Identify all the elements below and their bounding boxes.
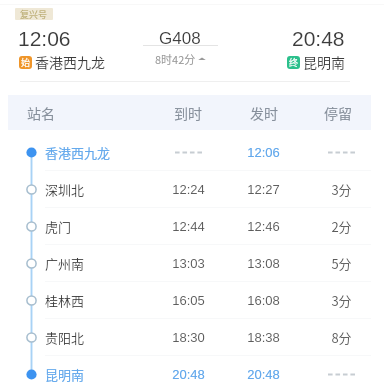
staticText: 桂林西 [45,291,85,310]
staticText: 香港西九龙 [35,52,105,72]
staticText: 12:24 [172,182,205,197]
staticText: 3分 [331,291,352,310]
staticText: 3分 [331,180,352,199]
button[interactable]: 始 [19,52,105,72]
staticText: 20:48 [247,367,280,382]
staticText: 复兴号 [20,8,48,20]
staticText: 昆明南 [45,365,85,384]
staticText: 12:27 [247,182,280,197]
staticText: 12:06 [18,27,71,50]
staticText: 昆明南 [303,52,345,72]
staticText: 2分 [331,217,352,236]
button[interactable]: 昆明南 [0,356,384,392]
staticText: 8分 [331,328,352,347]
staticText: 13:03 [172,256,205,271]
button[interactable]: 深圳北 [0,171,384,208]
staticText: 深圳北 [45,180,85,199]
button[interactable]: 贵阳北 [0,319,384,356]
staticText: 到时 [174,103,202,123]
staticText: 18:38 [247,330,280,345]
staticText: 停留 [324,103,352,123]
staticText: 发时 [250,103,278,123]
staticText: 站名 [27,103,55,123]
button[interactable]: 虎门 [0,208,384,245]
staticText: 13:08 [247,256,280,271]
button[interactable]: 香港西九龙 [0,134,384,171]
staticText: 16:05 [172,293,205,308]
staticText: 8时42分 [155,51,196,67]
staticText: 12:06 [247,145,280,160]
button[interactable]: 广州南 [0,245,384,282]
staticText: 香港西九龙 [45,143,111,162]
staticText: 18:30 [172,330,205,345]
button[interactable]: 终 [287,52,345,72]
staticText: 16:08 [247,293,280,308]
staticText: 始 [21,56,31,69]
staticText: 虎门 [45,217,72,236]
staticText: 贵阳北 [45,328,85,347]
staticText: 广州南 [45,254,85,273]
staticText: 5分 [331,254,352,273]
staticText: G408 [159,29,201,48]
button[interactable]: 8时42分 [155,51,206,67]
staticText: 20:48 [172,367,205,382]
staticText: 12:46 [247,219,280,234]
staticText: 12:44 [172,219,205,234]
staticText: 终 [289,56,299,69]
staticText: 20:48 [292,27,345,50]
button[interactable]: 桂林西 [0,282,384,319]
